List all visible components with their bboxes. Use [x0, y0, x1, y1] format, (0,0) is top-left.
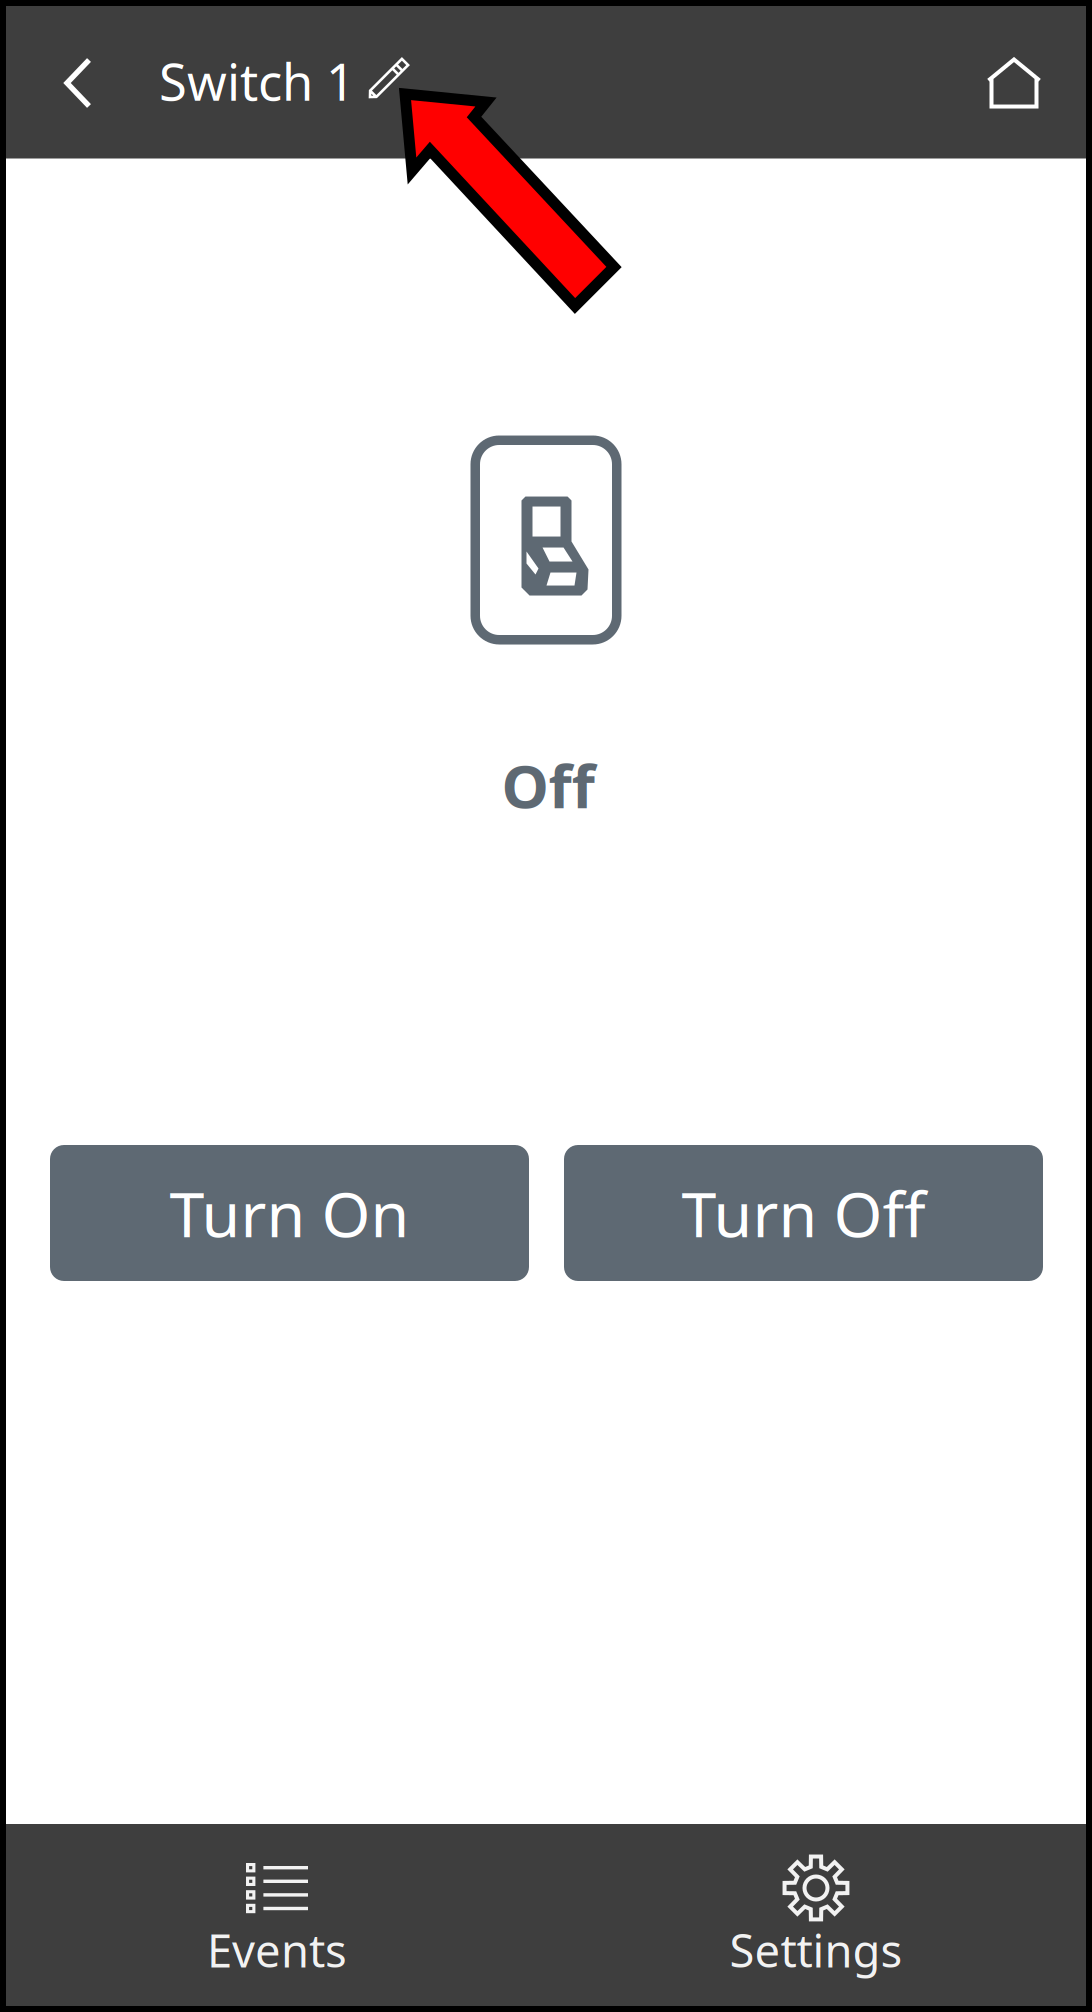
- staticText: Off: [501, 745, 594, 825]
- button[interactable]: Turn Off: [564, 1145, 1043, 1281]
- button[interactable]: Settings: [606, 1824, 1026, 2006]
- staticText: Turn Off: [681, 1171, 925, 1255]
- staticText: Turn On: [169, 1171, 409, 1255]
- button[interactable]: Events: [67, 1824, 487, 2006]
- button[interactable]: Turn On: [50, 1145, 529, 1281]
- button[interactable]: Home: [965, 28, 1063, 138]
- button[interactable]: Back: [26, 18, 130, 148]
- staticText: Switch 1: [159, 47, 355, 115]
- button[interactable]: Edit: [355, 39, 421, 119]
- staticText: Settings: [729, 1920, 902, 1980]
- staticText: Events: [207, 1920, 347, 1980]
